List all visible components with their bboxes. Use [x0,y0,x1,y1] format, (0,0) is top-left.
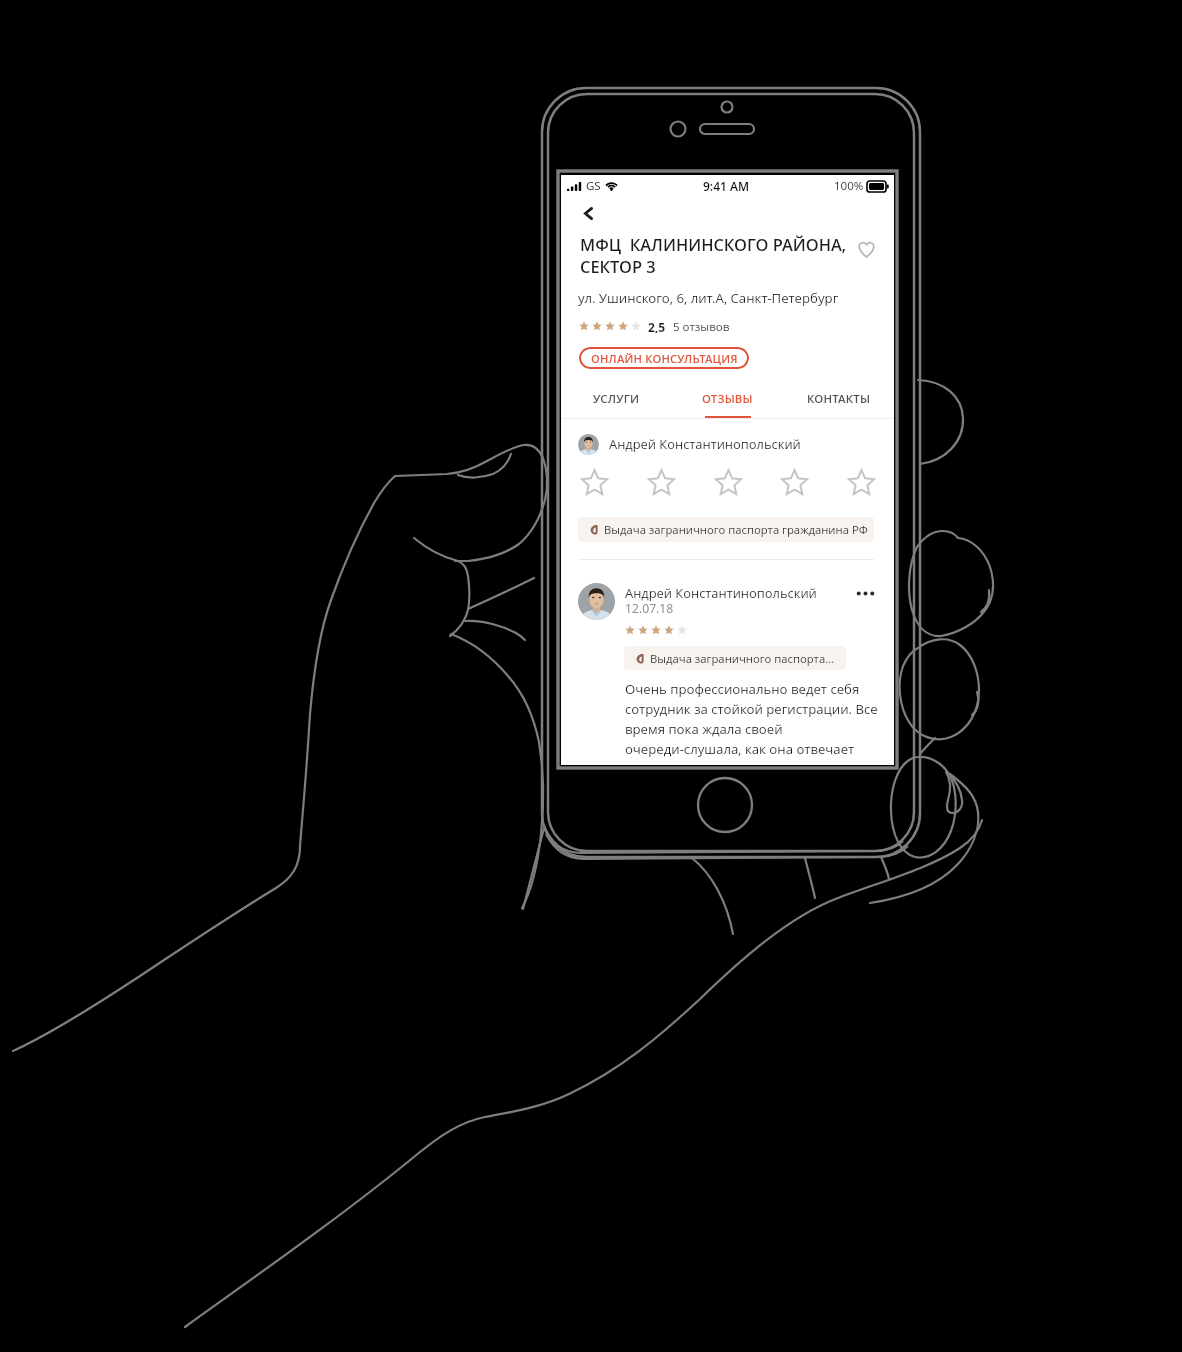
button[interactable]: Back [571,196,605,230]
staticText: Очень профессионально ведет себя сотрудн… [625,680,878,758]
staticText: 2,5 [648,319,666,333]
staticText: 100% [834,178,864,194]
button[interactable]: ОНЛАЙН КОНСУЛЬТАЦИЯ [579,347,749,369]
staticText: ОТЗЫВЫ [702,391,753,407]
staticText: Выдача заграничного паспорта гражданина … [604,522,868,537]
button[interactable]: Андрей Константинопольский [625,584,817,602]
button[interactable]: Rate 5 stars [844,465,878,499]
button[interactable]: Add to favorites [851,234,881,264]
button[interactable]: More options [852,580,878,606]
staticText: 12.07.18 [625,600,674,617]
button[interactable]: Андрей Константинопольский [578,433,801,455]
staticText: КОНТАКТЫ [807,391,871,407]
button[interactable]: Выдача заграничного паспорта... [624,646,846,670]
button[interactable]: Rate 1 stars [577,465,611,499]
staticText: Выдача заграничного паспорта... [650,651,835,666]
button[interactable]: ОТЗЫВЫ [672,391,783,418]
staticText: 5 отзывов [673,319,730,333]
button[interactable]: Rate 4 stars [777,465,811,499]
button[interactable]: УСЛУГИ [561,391,672,418]
staticText: МФЦ КАЛИНИНСКОГО РАЙОНА, СЕКТОР 3 [580,233,860,278]
button[interactable]: Выдача заграничного паспорта гражданина … [578,517,874,542]
button[interactable]: Rate 3 stars [711,465,745,499]
staticText: ОНЛАЙН КОНСУЛЬТАЦИЯ [591,351,738,366]
staticText: Андрей Константинопольский [609,435,801,453]
button[interactable]: КОНТАКТЫ [783,391,894,418]
staticText: 9:41 AM [703,178,749,194]
button[interactable]: Андрей Константинопольский avatar [578,583,615,620]
staticText: УСЛУГИ [593,391,640,407]
staticText: GS [586,178,601,194]
button[interactable]: Rate 2 stars [644,465,678,499]
staticText: ул. Ушинского, 6, лит.А, Санкт-Петербург [578,289,839,307]
